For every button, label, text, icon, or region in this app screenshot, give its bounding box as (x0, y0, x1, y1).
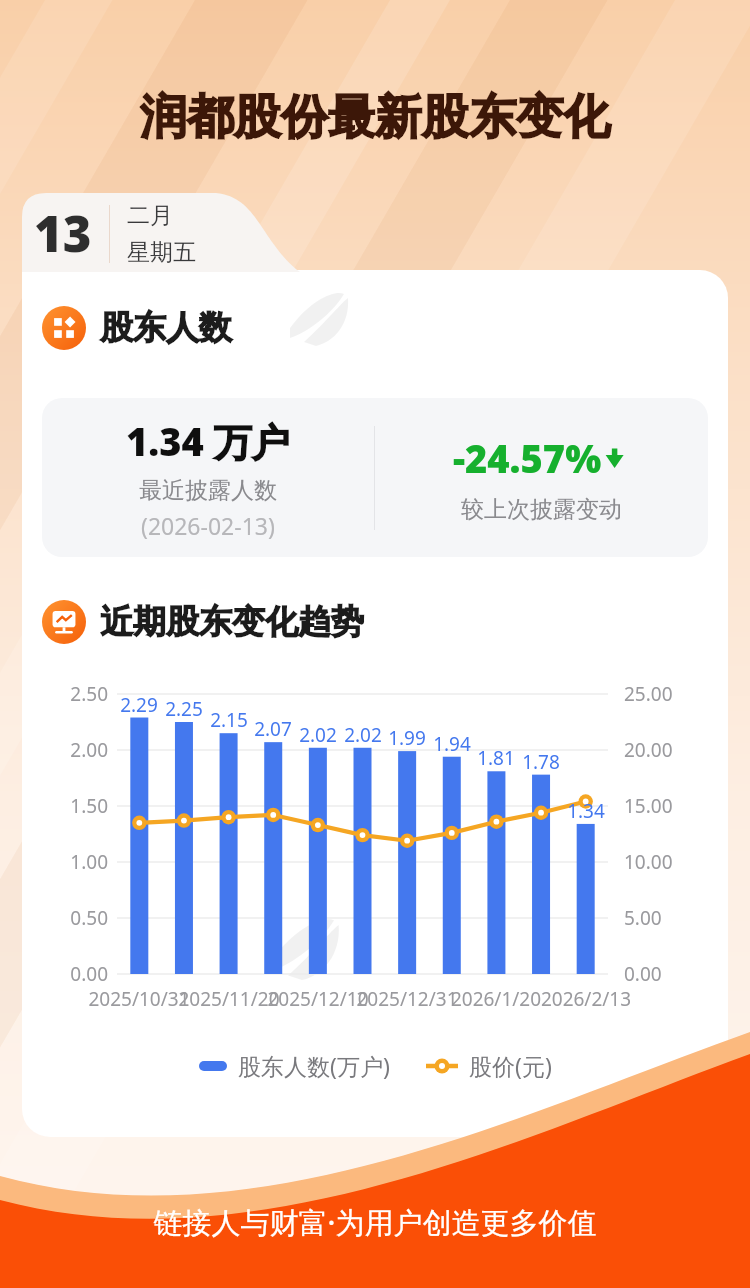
staticText: 2.00 (50, 737, 108, 763)
staticText: 2026/2/13 (531, 986, 641, 1012)
staticText: 2.15 (201, 707, 257, 733)
button[interactable]: 股东人数 (42, 306, 232, 350)
staticText: 0.50 (50, 905, 108, 931)
staticText: 润都股份最新股东变化 (0, 88, 750, 147)
button[interactable]: 股东人数(万户) (199, 1050, 390, 1081)
staticText: 2025/12/10 (263, 986, 373, 1012)
staticText: 二月 (127, 201, 173, 230)
staticText: 1.00 (50, 849, 108, 875)
staticText: 2.07 (245, 716, 301, 742)
staticText: 2.02 (290, 722, 346, 748)
staticText: 股东人数(万户) (238, 1050, 390, 1081)
staticText: 1.34 万户 (126, 415, 290, 467)
staticText: 0.00 (624, 961, 662, 987)
staticText: 2.50 (50, 681, 108, 707)
other: 趋势图 (42, 600, 86, 644)
staticText: 5.00 (624, 905, 662, 931)
other: 股东人数 (42, 306, 86, 350)
staticText: 13 (34, 200, 92, 267)
staticText: 2025/12/31 (352, 986, 462, 1012)
staticText: 0.00 (50, 961, 108, 987)
staticText: 1.94 (424, 731, 480, 757)
staticText: 2025/10/31 (84, 986, 194, 1012)
staticText: 股东人数 (100, 307, 232, 349)
staticText: 15.00 (624, 793, 673, 819)
staticText: (2026-02-13) (141, 510, 275, 541)
button[interactable]: 1.34 万户 (42, 398, 708, 557)
staticText: 链接人与财富·为用户创造更多价值 (0, 1202, 750, 1242)
staticText: 1.81 (468, 745, 524, 771)
staticText: 近期股东变化趋势 (100, 601, 364, 643)
staticText: 1.78 (513, 749, 569, 775)
staticText: 较上次披露变动 (461, 495, 622, 524)
staticText: 2026/1/20 (441, 986, 551, 1012)
staticText: -24.57% (453, 432, 602, 484)
staticText: 最近披露人数 (139, 476, 277, 505)
staticText: 20.00 (624, 737, 673, 763)
staticText: 2025/11/20 (174, 986, 284, 1012)
button[interactable]: 趋势图 (42, 600, 364, 644)
staticText: 星期五 (127, 238, 196, 267)
staticText: 1.34 (558, 798, 614, 824)
staticText: 10.00 (624, 849, 673, 875)
staticText: 2.25 (156, 696, 212, 722)
button[interactable]: 股价(元) (426, 1050, 552, 1081)
staticText: 25.00 (624, 681, 673, 707)
staticText: 2.02 (335, 722, 391, 748)
staticText: 股价(元) (469, 1050, 552, 1081)
staticText: 1.50 (50, 793, 108, 819)
button[interactable]: 13 (34, 200, 196, 267)
staticText: 2.29 (111, 692, 167, 718)
staticText: 1.99 (379, 725, 435, 751)
